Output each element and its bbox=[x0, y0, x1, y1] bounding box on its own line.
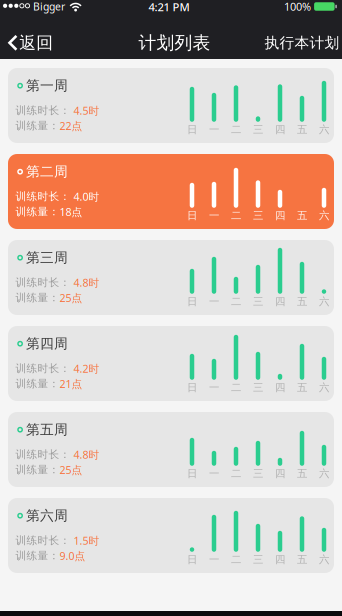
staticText: 二 bbox=[231, 467, 241, 480]
staticText: 训练时长： bbox=[15, 362, 70, 375]
staticText: 一 bbox=[209, 123, 219, 136]
staticText: 25点 bbox=[59, 462, 82, 477]
staticText: 4.5时 bbox=[73, 103, 99, 118]
staticText: 第五周 bbox=[26, 421, 68, 438]
staticText: 四 bbox=[275, 553, 285, 566]
staticText: 五 bbox=[297, 209, 307, 222]
staticText: 三 bbox=[253, 123, 263, 136]
staticText: 第四周 bbox=[26, 335, 68, 352]
staticText: 训练时长： bbox=[15, 534, 70, 547]
staticText: 五 bbox=[297, 123, 307, 136]
staticText: 日 bbox=[187, 123, 197, 136]
staticText: 一 bbox=[209, 295, 219, 308]
staticText: 三 bbox=[253, 209, 263, 222]
staticText: 五 bbox=[297, 553, 307, 566]
staticText: 三 bbox=[253, 467, 263, 480]
staticText: 第二周 bbox=[26, 163, 68, 180]
staticText: Bigger bbox=[33, 0, 65, 14]
staticText: 一 bbox=[209, 553, 219, 566]
staticText: 日 bbox=[187, 295, 197, 308]
staticText: 一 bbox=[209, 381, 219, 394]
staticText: 训练量： bbox=[15, 291, 59, 304]
staticText: 日 bbox=[187, 467, 197, 480]
staticText: 一 bbox=[209, 467, 219, 480]
staticText: 100% bbox=[284, 0, 311, 14]
staticText: 计划列表 bbox=[139, 32, 211, 54]
staticText: 六 bbox=[319, 381, 329, 394]
staticText: 五 bbox=[297, 381, 307, 394]
staticText: 4.8时 bbox=[73, 447, 99, 462]
staticText: 训练量： bbox=[15, 119, 59, 132]
staticText: 4.0时 bbox=[73, 189, 99, 204]
staticText: 二 bbox=[231, 553, 241, 566]
staticText: 一 bbox=[209, 209, 219, 222]
staticText: 训练量： bbox=[15, 463, 59, 476]
button[interactable]: 第四周 bbox=[8, 326, 334, 401]
staticText: 四 bbox=[275, 381, 285, 394]
staticText: 第六周 bbox=[26, 507, 68, 524]
staticText: 二 bbox=[231, 123, 241, 136]
staticText: 六 bbox=[319, 295, 329, 308]
staticText: 训练时长： bbox=[15, 190, 70, 203]
staticText: 训练时长： bbox=[15, 448, 70, 461]
staticText: 日 bbox=[187, 209, 197, 222]
staticText: 1.5时 bbox=[73, 533, 99, 548]
staticText: 22点 bbox=[59, 118, 82, 133]
staticText: 三 bbox=[253, 553, 263, 566]
button[interactable]: 第五周 bbox=[8, 412, 334, 487]
staticText: 四 bbox=[275, 123, 285, 136]
staticText: 六 bbox=[319, 553, 329, 566]
staticText: 训练时长： bbox=[15, 276, 70, 289]
staticText: 训练量： bbox=[15, 205, 59, 218]
staticText: 训练量： bbox=[15, 377, 59, 390]
staticText: 二 bbox=[231, 295, 241, 308]
staticText: 四 bbox=[275, 209, 285, 222]
button[interactable]: 第二周 bbox=[8, 154, 334, 229]
staticText: 日 bbox=[187, 553, 197, 566]
staticText: 4.2时 bbox=[73, 361, 99, 376]
button[interactable]: 第一周 bbox=[8, 68, 334, 143]
staticText: 六 bbox=[319, 209, 329, 222]
button[interactable]: 执行本计划 bbox=[264, 34, 342, 52]
button[interactable]: 第三周 bbox=[8, 240, 334, 315]
button[interactable]: 返回 bbox=[0, 34, 53, 52]
staticText: 二 bbox=[231, 209, 241, 222]
staticText: 四 bbox=[275, 295, 285, 308]
staticText: 训练时长： bbox=[15, 104, 70, 117]
staticText: 二 bbox=[231, 381, 241, 394]
button[interactable]: 第六周 bbox=[8, 498, 334, 573]
staticText: 4.8时 bbox=[73, 275, 99, 290]
staticText: 三 bbox=[253, 295, 263, 308]
staticText: 4:21 PM bbox=[148, 0, 189, 15]
staticText: 第三周 bbox=[26, 249, 68, 266]
staticText: 五 bbox=[297, 467, 307, 480]
staticText: 执行本计划 bbox=[264, 34, 339, 52]
staticText: 训练量： bbox=[15, 549, 59, 562]
staticText: 四 bbox=[275, 467, 285, 480]
staticText: 9.0点 bbox=[59, 548, 85, 563]
staticText: 18点 bbox=[59, 204, 82, 219]
staticText: 25点 bbox=[59, 290, 82, 305]
staticText: 五 bbox=[297, 295, 307, 308]
staticText: 21点 bbox=[59, 376, 82, 391]
staticText: 日 bbox=[187, 381, 197, 394]
staticText: 第一周 bbox=[26, 77, 68, 94]
staticText: 六 bbox=[319, 467, 329, 480]
staticText: 返回 bbox=[19, 32, 53, 53]
staticText: 三 bbox=[253, 381, 263, 394]
staticText: 六 bbox=[319, 123, 329, 136]
